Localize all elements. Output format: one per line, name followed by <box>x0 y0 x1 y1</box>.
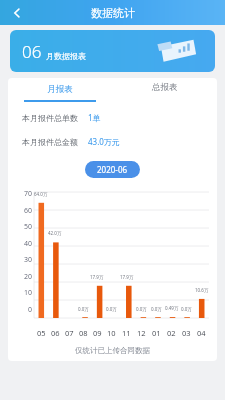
staticText: 本月报件总金额 <box>22 137 78 147</box>
staticText: 数据统计 <box>91 6 135 20</box>
button[interactable]: 2020-06 <box>85 161 140 178</box>
staticText: 0.0万 <box>106 306 117 312</box>
staticText: 08 <box>79 328 88 338</box>
staticText: 03 <box>182 328 191 338</box>
staticText: 本月报件总单数 <box>22 113 78 123</box>
staticText: 50 <box>8 222 32 232</box>
staticText: 06 <box>51 328 60 338</box>
staticText: 月报表 <box>47 84 73 95</box>
staticText: 06 <box>22 40 42 63</box>
staticText: 1单 <box>88 112 101 123</box>
staticText: 0.0万 <box>181 306 192 312</box>
staticText: 01 <box>152 328 161 338</box>
staticText: 17.9万 <box>120 274 134 280</box>
staticText: 总报表 <box>152 82 178 93</box>
button[interactable]: 06 <box>10 30 215 72</box>
staticText: 30 <box>8 255 32 265</box>
staticText: 60 <box>8 206 32 216</box>
staticText: 07 <box>65 328 74 338</box>
staticText: 2020-06 <box>97 164 128 175</box>
staticText: 10.6万 <box>195 287 209 293</box>
staticText: 17.9万 <box>90 274 104 280</box>
staticText: 40 <box>8 239 32 249</box>
staticText: 10 <box>8 288 32 298</box>
staticText: 0.0万 <box>78 306 89 312</box>
staticText: 0.49万 <box>165 305 179 311</box>
staticText: 0 <box>8 305 32 315</box>
staticText: 05 <box>37 328 46 338</box>
staticText: 0.0万 <box>151 306 162 312</box>
staticText: 09 <box>93 328 102 338</box>
staticText: 月数据报表 <box>46 51 86 61</box>
staticText: 42.0万 <box>48 230 62 236</box>
button[interactable]: 本月报件总单数 <box>22 112 217 123</box>
button[interactable]: 月报表 <box>8 78 112 102</box>
staticText: 仅统计已上传合同数据 <box>75 346 150 355</box>
staticText: 12 <box>137 328 146 338</box>
staticText: 20 <box>8 272 32 282</box>
staticText: 04 <box>197 328 206 338</box>
staticText: 43.0万元 <box>88 136 120 147</box>
staticText: 10 <box>107 328 116 338</box>
staticText: 64.0万 <box>34 191 48 197</box>
button[interactable]: Back <box>6 2 28 24</box>
staticText: 02 <box>167 328 176 338</box>
button[interactable]: 总报表 <box>112 78 217 102</box>
staticText: 70 <box>8 189 32 199</box>
staticText: 11 <box>122 328 131 338</box>
staticText: 0.0万 <box>136 306 147 312</box>
button[interactable]: 本月报件总金额 <box>22 136 217 147</box>
